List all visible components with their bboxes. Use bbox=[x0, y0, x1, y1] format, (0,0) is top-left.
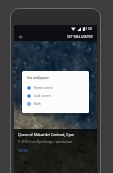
staticText: © 2018 Cross Ryon Image, reproduction bbox=[18, 140, 73, 144]
staticText: Queen of Maluai Art Contrast, Cyan bbox=[18, 132, 75, 137]
button[interactable]: MORE bbox=[18, 148, 28, 153]
button[interactable]: Back bbox=[16, 32, 25, 41]
staticText: Both bbox=[34, 102, 41, 106]
button[interactable]: Home screen bbox=[27, 84, 85, 92]
button[interactable]: SET WALLPAPER bbox=[65, 32, 95, 41]
button[interactable]: Lock screen bbox=[27, 92, 85, 100]
staticText: Home screen bbox=[34, 86, 53, 90]
staticText: 11:08 bbox=[84, 27, 93, 31]
staticText: Set wallpaper bbox=[27, 75, 50, 80]
button[interactable]: Both bbox=[27, 100, 85, 108]
staticText: Lock screen bbox=[34, 94, 51, 98]
staticText: SET WALLPAPER bbox=[67, 34, 93, 39]
staticText: MORE bbox=[18, 148, 28, 153]
